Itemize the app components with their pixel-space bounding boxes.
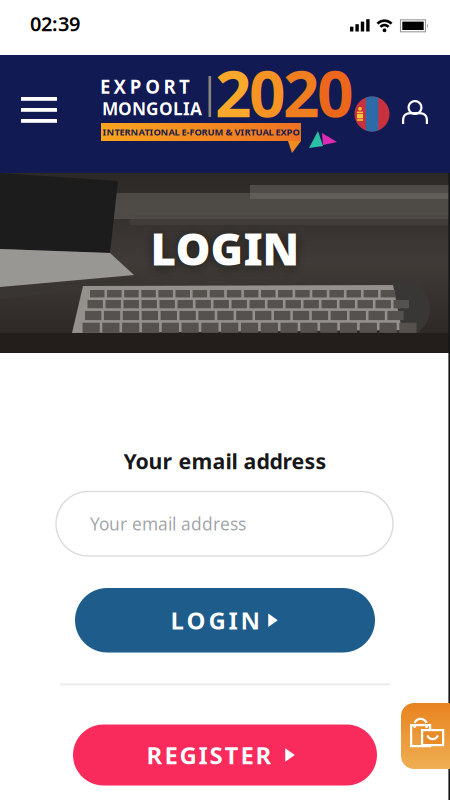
- staticText: X: [113, 74, 126, 99]
- staticText: 2: [215, 50, 252, 135]
- staticText: T: [179, 74, 190, 99]
- staticText: O: [145, 74, 160, 99]
- staticText: MONGOLIA: [102, 97, 202, 120]
- staticText: E: [100, 74, 110, 99]
- staticText: G: [179, 739, 196, 771]
- button[interactable]: Shop: [401, 703, 450, 769]
- staticText: I: [228, 604, 237, 636]
- staticText: T: [224, 739, 238, 771]
- staticText: G: [208, 604, 225, 636]
- staticText: INTERNATIONAL E-FORUM & VIRTUAL EXPO: [102, 126, 299, 138]
- staticText: R: [255, 739, 271, 771]
- button[interactable]: R: [73, 724, 377, 785]
- button[interactable]: L: [75, 588, 375, 652]
- staticText: 02:39: [30, 10, 80, 37]
- staticText: Your email address: [123, 447, 326, 475]
- staticText: S: [209, 739, 222, 771]
- staticText: O: [186, 604, 205, 636]
- button[interactable]: Menu: [0, 81, 78, 139]
- staticText: 2: [283, 50, 320, 135]
- staticText: Your email address: [90, 512, 246, 535]
- button[interactable]: Your email address: [56, 491, 393, 556]
- staticText: R: [146, 739, 162, 771]
- button[interactable]: Language: [354, 96, 389, 131]
- staticText: R: [164, 74, 176, 99]
- staticText: 0: [249, 50, 286, 135]
- staticText: 0: [317, 50, 354, 135]
- staticText: L: [170, 604, 183, 636]
- staticText: I: [198, 739, 207, 771]
- staticText: E: [164, 739, 177, 771]
- staticText: LOGIN: [150, 219, 299, 278]
- staticText: P: [130, 74, 142, 99]
- staticText: N: [240, 604, 260, 636]
- staticText: E: [240, 739, 253, 771]
- button[interactable]: Account: [394, 92, 436, 132]
